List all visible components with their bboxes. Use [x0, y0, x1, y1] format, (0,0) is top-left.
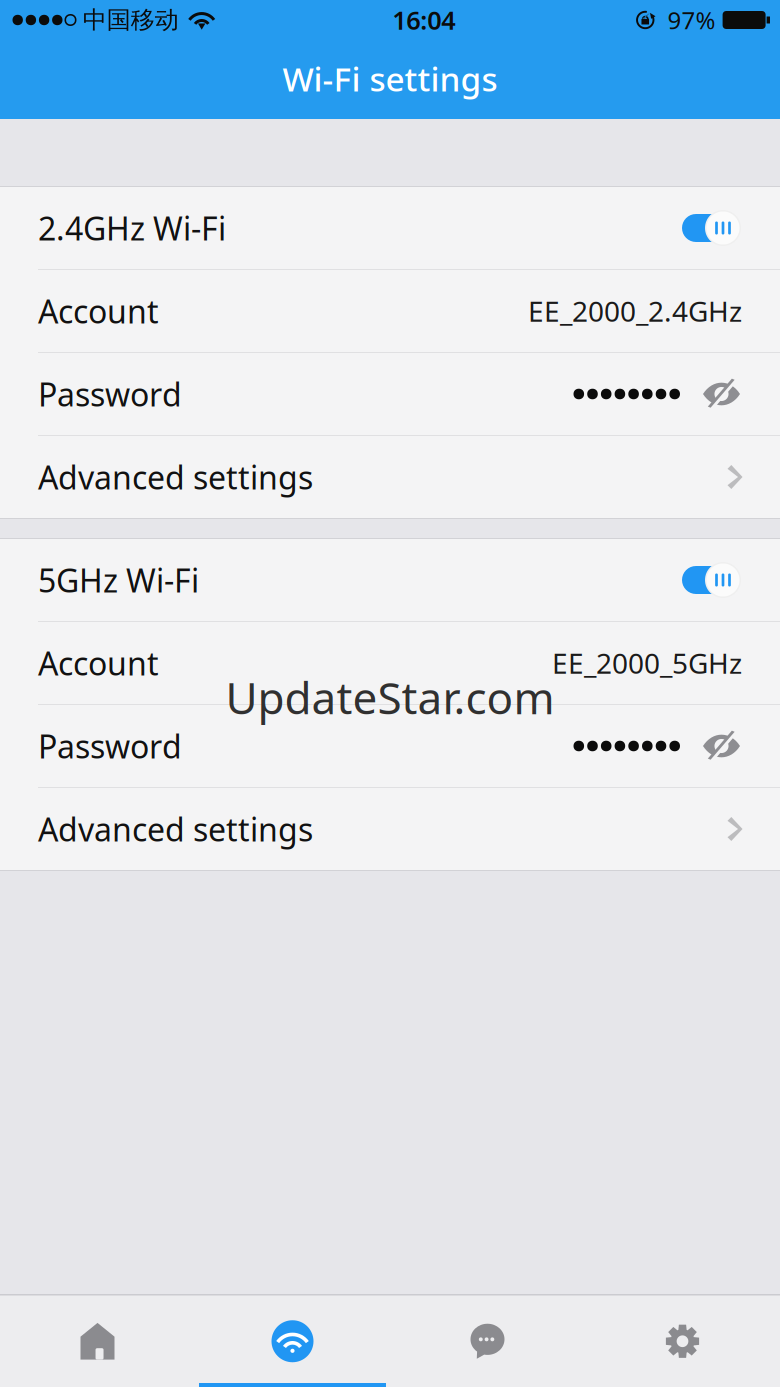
button[interactable]: Advanced settings	[0, 788, 780, 870]
staticText: Account	[38, 290, 159, 332]
button[interactable]: Password	[0, 705, 780, 787]
staticText: Advanced settings	[38, 808, 313, 850]
button[interactable]: Account	[0, 622, 780, 704]
staticText: EE_2000_2.4GHz	[528, 292, 742, 330]
staticText: Wi-Fi settings	[282, 56, 497, 101]
staticText: 16:04	[392, 3, 455, 37]
staticText: Password	[38, 725, 182, 767]
button[interactable]: Advanced settings	[0, 436, 780, 518]
staticText: EE_2000_5GHz	[552, 644, 742, 682]
button[interactable]: Settings	[585, 1295, 780, 1387]
staticText: Account	[38, 642, 159, 684]
staticText: 2.4GHz Wi-Fi	[38, 207, 226, 249]
staticText: 中国移动	[83, 5, 179, 35]
staticText: Advanced settings	[38, 456, 313, 498]
staticText: 5GHz Wi-Fi	[38, 559, 199, 601]
staticText: Password	[38, 373, 182, 415]
staticText: UpdateStar.com	[225, 668, 554, 726]
button[interactable]: Messages	[390, 1295, 585, 1387]
button[interactable]: Password	[0, 353, 780, 435]
button[interactable]: 2.4GHz Wi-Fi	[0, 187, 780, 269]
button[interactable]: Wi-Fi	[195, 1295, 390, 1387]
button[interactable]: Home	[0, 1295, 195, 1387]
button[interactable]: 5GHz Wi-Fi	[0, 539, 780, 621]
staticText: 97%	[668, 4, 716, 36]
button[interactable]: Account	[0, 270, 780, 352]
